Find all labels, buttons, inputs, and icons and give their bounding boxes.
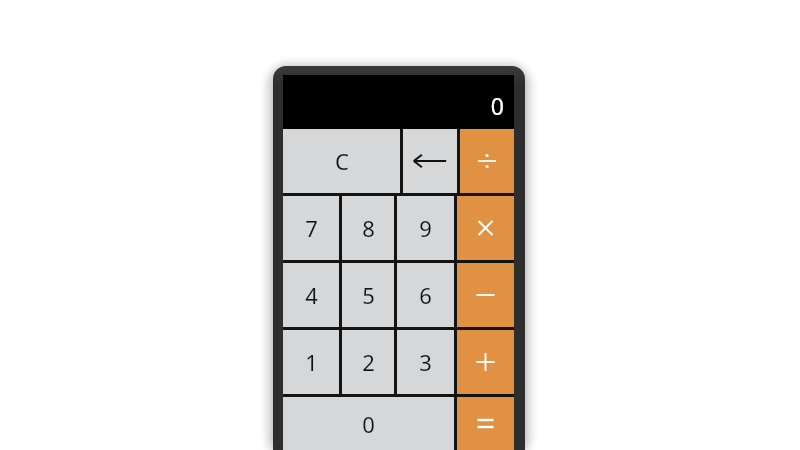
button[interactable]: 7 (283, 196, 339, 260)
button[interactable]: 1 (283, 330, 339, 394)
button[interactable]: 5 (342, 263, 394, 327)
button[interactable]: 4 (283, 263, 339, 327)
staticText: 7 (305, 213, 318, 243)
button[interactable]: C (283, 129, 400, 193)
staticText: 2 (362, 347, 375, 377)
staticText: 5 (362, 280, 375, 310)
button[interactable]: 3 (397, 330, 454, 394)
staticText: 8 (362, 213, 375, 243)
staticText: 0 (362, 409, 375, 439)
button[interactable]: Operator (457, 196, 514, 260)
staticText: 1 (305, 347, 318, 377)
staticText: 6 (419, 280, 432, 310)
staticText: 0 (490, 90, 504, 121)
button[interactable]: Equals (457, 397, 514, 450)
staticText: C (335, 146, 349, 176)
staticText: 9 (419, 213, 432, 243)
button[interactable]: Backspace (403, 129, 457, 193)
staticText: 4 (305, 280, 318, 310)
button[interactable]: 2 (342, 330, 394, 394)
button[interactable]: 8 (342, 196, 394, 260)
button[interactable]: Divide (460, 129, 514, 193)
button[interactable]: Operator (457, 330, 514, 394)
staticText: 3 (419, 347, 432, 377)
button[interactable]: 9 (397, 196, 454, 260)
button[interactable]: Operator (457, 263, 514, 327)
button[interactable]: 0 (283, 397, 454, 450)
button[interactable]: 6 (397, 263, 454, 327)
